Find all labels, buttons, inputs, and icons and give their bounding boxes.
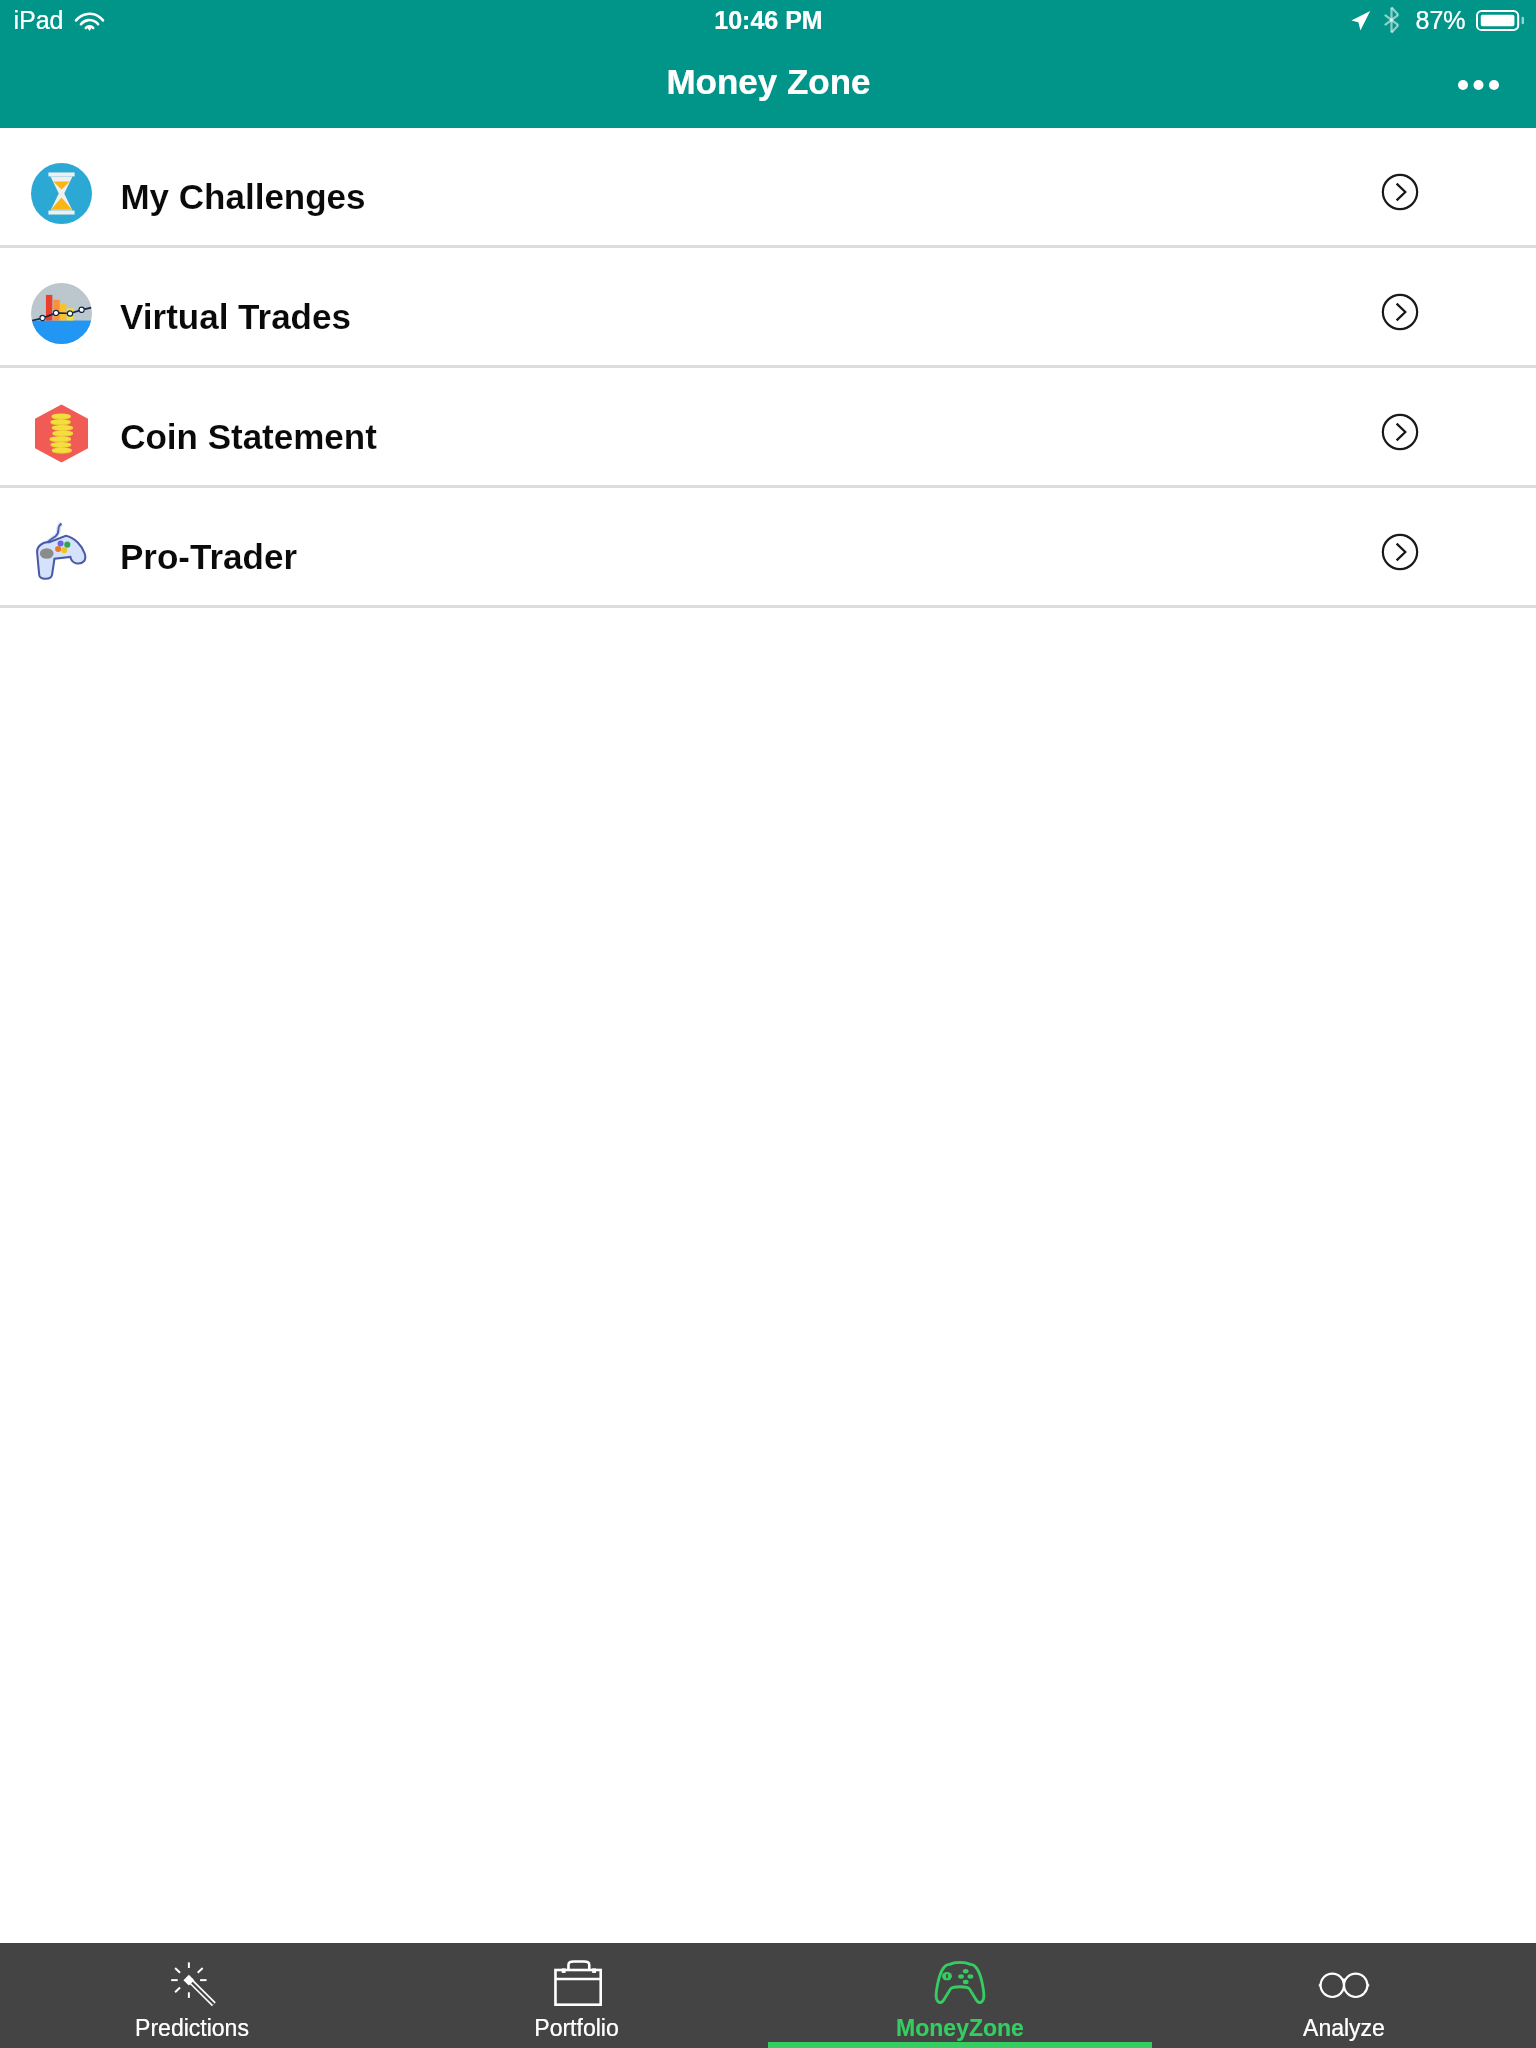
button[interactable]: Coin Statement <box>0 368 1536 488</box>
staticText: Coin Statement <box>120 417 377 456</box>
other: Open My Challenges <box>1381 173 1419 211</box>
button[interactable]: My Challenges <box>0 128 1536 248</box>
button[interactable]: Portfolio <box>384 1943 768 2048</box>
staticText: 87% <box>1415 6 1466 34</box>
staticText: iPad <box>13 6 64 34</box>
other: Open Coin Statement <box>1381 413 1419 451</box>
staticText: MoneyZone <box>896 2015 1024 2041</box>
staticText: Money Zone <box>666 62 871 101</box>
button[interactable]: MoneyZone <box>768 1943 1152 2048</box>
other: Open Pro-Trader <box>1381 533 1419 571</box>
button[interactable]: Pro-Trader <box>0 488 1536 608</box>
staticText: Pro-Trader <box>120 537 297 576</box>
staticText: Virtual Trades <box>120 297 351 336</box>
staticText: Predictions <box>135 2015 249 2041</box>
staticText: Portfolio <box>534 2015 619 2041</box>
staticText: 10:46 PM <box>714 6 823 34</box>
button[interactable]: More options <box>1438 58 1518 112</box>
button[interactable]: Analyze <box>1152 1943 1536 2048</box>
staticText: My Challenges <box>120 177 366 216</box>
other: Open Virtual Trades <box>1381 293 1419 331</box>
button[interactable]: Predictions <box>0 1943 384 2048</box>
button[interactable]: Virtual Trades <box>0 248 1536 368</box>
staticText: Analyze <box>1303 2015 1385 2041</box>
